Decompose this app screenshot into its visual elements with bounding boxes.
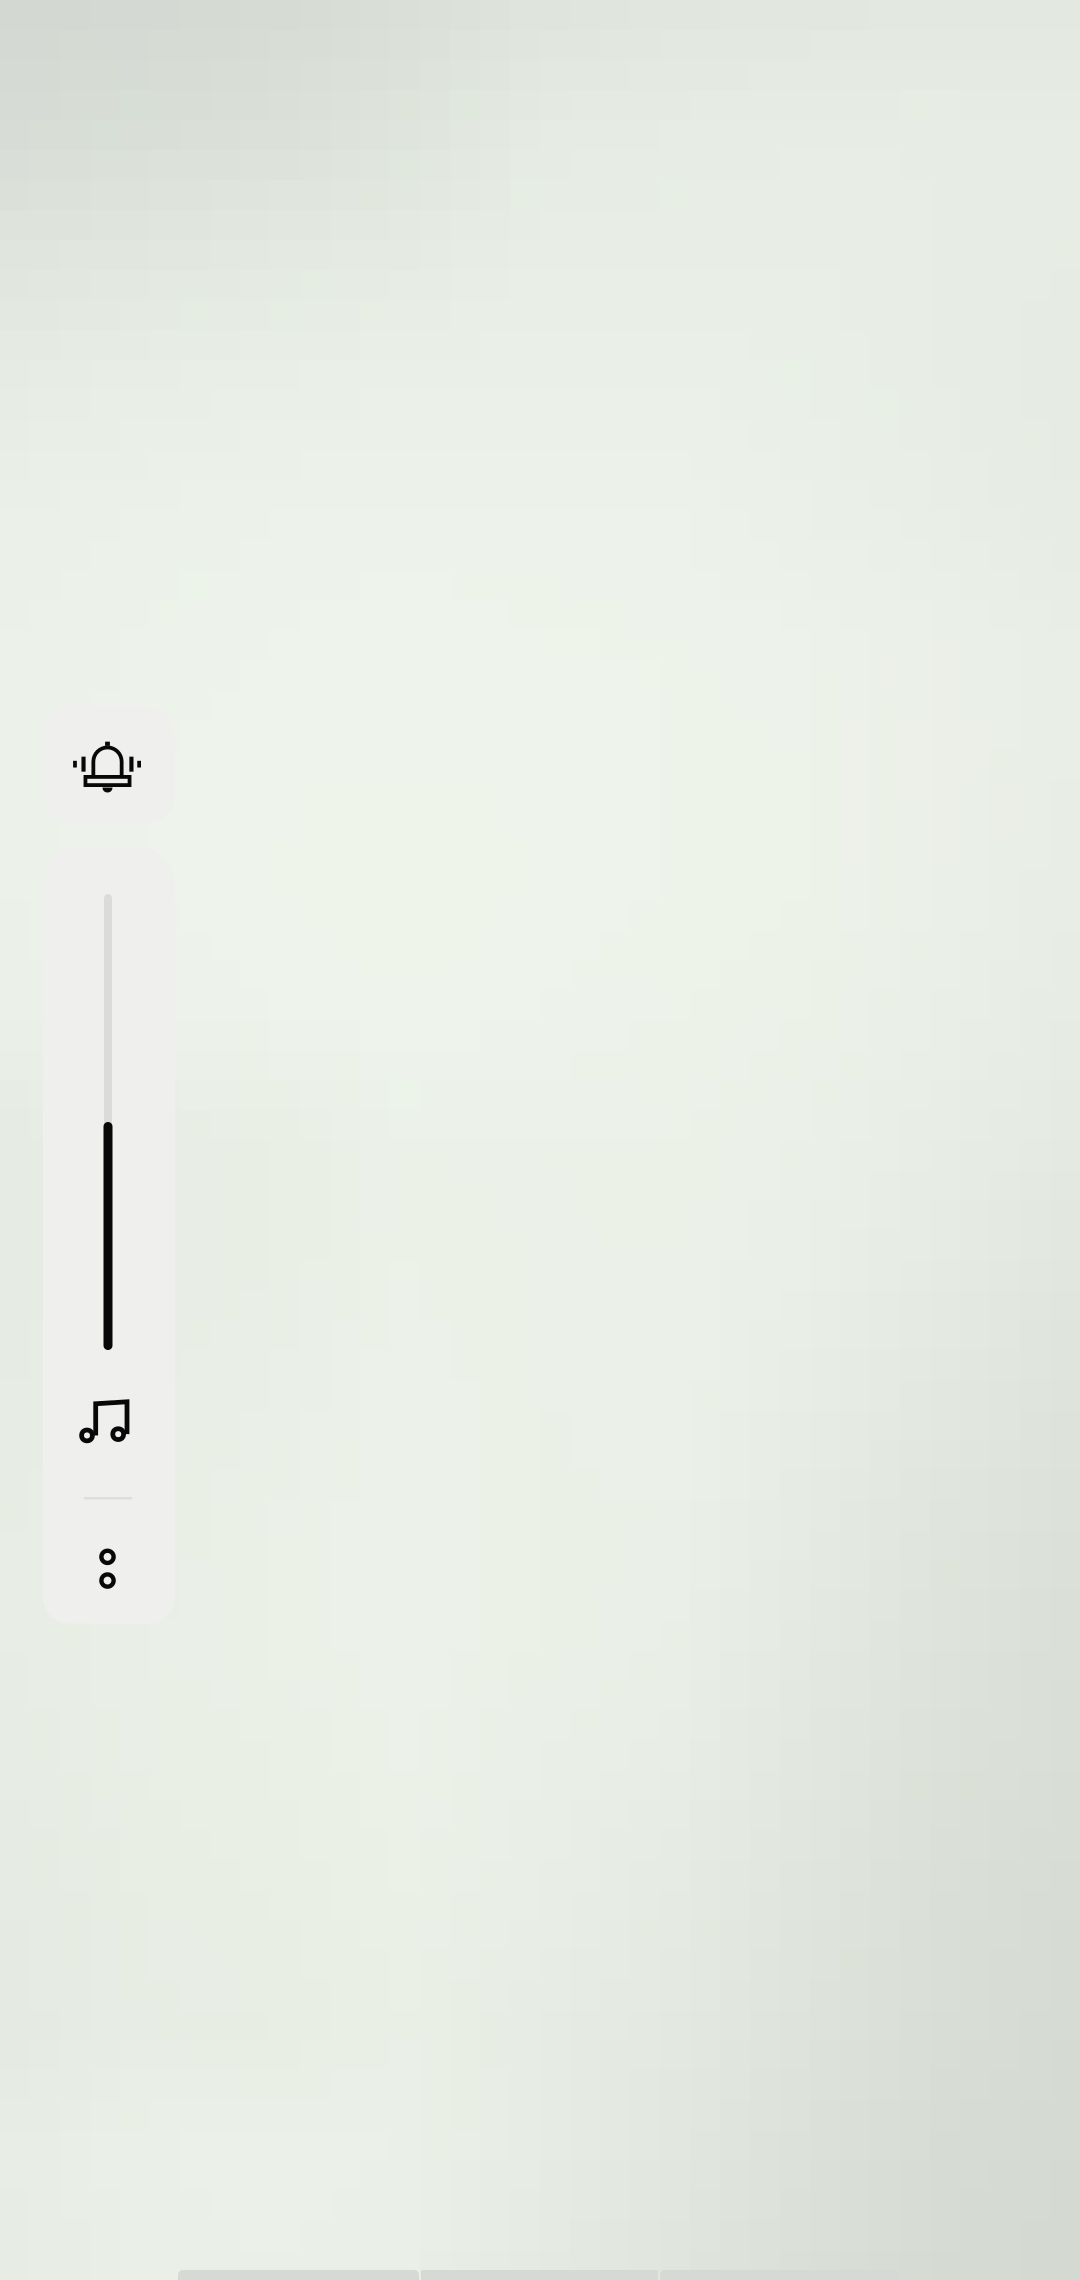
button[interactable]: Volume (43, 846, 175, 1623)
button[interactable]: Ringer mode (43, 705, 175, 824)
